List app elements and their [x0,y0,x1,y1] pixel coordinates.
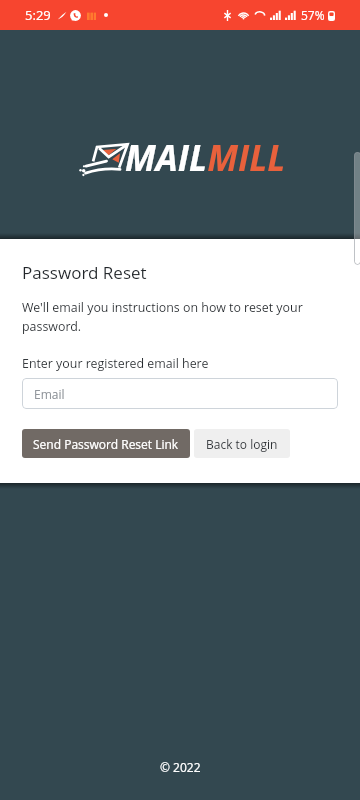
staticText: 5:29 [25,6,51,24]
staticText: © 2022 [160,759,201,775]
staticText: Password Reset [22,261,147,284]
staticText: MAILMILL [125,134,286,182]
button[interactable]: Back to login [194,429,290,458]
staticText: We'll email you instructions on how to r… [22,299,338,335]
staticText: Enter your registered email here [22,355,209,372]
button[interactable]: Email [22,378,338,409]
staticText: Back to login [206,436,278,452]
staticText: Send Password Reset Link [33,436,179,452]
staticText: Email [34,386,65,402]
staticText: 57% [301,7,325,23]
button[interactable]: Send Password Reset Link [22,429,190,458]
